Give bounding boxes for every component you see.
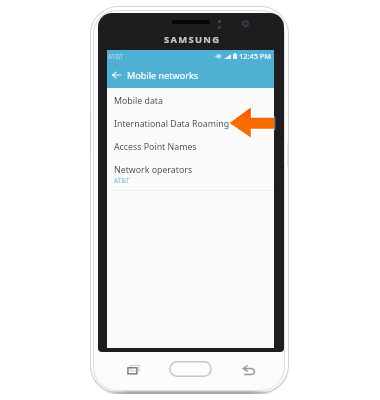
button[interactable]: International Data Roaming (107, 116, 274, 139)
staticText: Network operators (114, 164, 193, 176)
staticText: 12:45 PM (239, 51, 271, 61)
button[interactable]: Navigate up (107, 62, 274, 88)
staticText: International Data Roaming (114, 118, 230, 130)
staticText: AT&T (108, 52, 124, 61)
staticText: SAMSUNG (164, 33, 221, 44)
staticText: Mobile networks (127, 69, 199, 81)
button[interactable]: Access Point Names (107, 139, 274, 162)
button[interactable]: Recent apps (126, 362, 142, 378)
staticText: AT&T (114, 176, 130, 185)
button[interactable]: Mobile data (107, 93, 274, 116)
button[interactable]: Home (169, 361, 212, 377)
staticText: Mobile data (114, 95, 163, 107)
staticText: Access Point Names (114, 141, 197, 153)
button[interactable]: Back (240, 362, 257, 379)
other: Navigate up (112, 71, 121, 79)
button[interactable]: Network operators (107, 162, 274, 185)
